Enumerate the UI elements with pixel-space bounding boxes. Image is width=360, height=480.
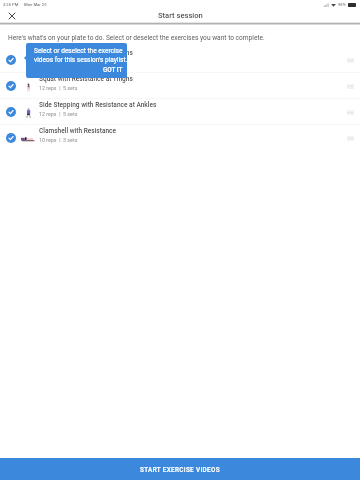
staticText: Side Stepping with Resistance at Ankles bbox=[39, 101, 157, 109]
button[interactable]: Reorder bbox=[345, 79, 355, 93]
button[interactable]: Reorder bbox=[345, 105, 355, 119]
staticText: Select or deselect the exercise videos f… bbox=[34, 47, 127, 64]
staticText: Squat with Resistance at Thighs bbox=[39, 49, 133, 57]
staticText: 12 reps | 5 sets bbox=[39, 85, 78, 91]
staticText: Clamshell with Resistance bbox=[39, 127, 117, 135]
staticText: Here's what's on your plate to do. Selec… bbox=[8, 34, 265, 42]
button[interactable]: GOT IT bbox=[34, 66, 123, 74]
staticText: GOT IT bbox=[103, 66, 123, 74]
staticText: 10 reps | 3 sets bbox=[39, 137, 78, 143]
staticText: Start session bbox=[158, 11, 203, 20]
button[interactable]: Squat with Resistance at Thighs bbox=[0, 73, 360, 99]
staticText: START EXERCISE VIDEOS bbox=[140, 466, 220, 473]
staticText: 98% bbox=[338, 2, 346, 7]
staticText: Mon Mar 25 bbox=[24, 2, 47, 7]
button[interactable]: Side Stepping with Resistance at Ankles bbox=[0, 99, 360, 125]
staticText: 3:26 PM bbox=[3, 2, 19, 7]
staticText: 12 reps | 5 sets bbox=[39, 59, 78, 65]
button[interactable]: Clamshell with Resistance bbox=[0, 125, 360, 151]
button[interactable]: Squat with Resistance at Thighs bbox=[0, 47, 360, 73]
button[interactable]: Reorder bbox=[345, 53, 355, 67]
button[interactable]: Close bbox=[5, 9, 18, 22]
staticText: 12 reps | 5 sets bbox=[39, 111, 78, 117]
button[interactable]: START EXERCISE VIDEOS bbox=[0, 458, 360, 480]
staticText: Squat with Resistance at Thighs bbox=[39, 75, 133, 83]
button[interactable]: Reorder bbox=[345, 131, 355, 145]
